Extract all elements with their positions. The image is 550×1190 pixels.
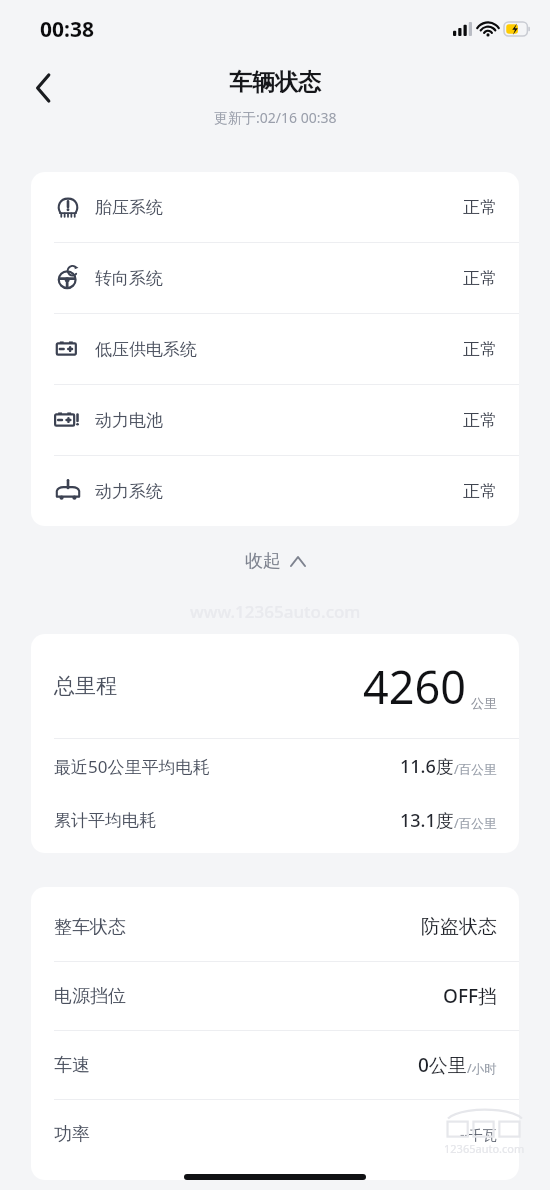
button[interactable]: 收起 [221, 540, 329, 583]
staticText: 0公里 [418, 1052, 467, 1078]
staticText: 正常 [463, 339, 497, 360]
staticText: 正常 [463, 268, 497, 289]
button[interactable]: 总里程 [31, 634, 519, 738]
staticText: OFF挡 [443, 983, 497, 1009]
staticText: 正常 [463, 197, 497, 218]
button[interactable]: Back [20, 64, 68, 112]
staticText: 正常 [463, 481, 497, 502]
staticText: 动力电池 [95, 410, 163, 431]
button[interactable]: 最近50公里平均电耗 [31, 739, 519, 793]
staticText: 最近50公里平均电耗 [54, 755, 210, 778]
button[interactable]: 动力系统 [31, 456, 519, 526]
staticText: 累计平均电耗 [54, 810, 156, 831]
button[interactable]: 低压供电系统 [31, 314, 519, 384]
staticText: 12365auto.com [444, 1141, 525, 1156]
staticText: 正常 [463, 410, 497, 431]
staticText: --千瓦 [460, 1125, 497, 1144]
staticText: /百公里 [454, 815, 497, 832]
staticText: 13.1度 [400, 808, 454, 833]
staticText: /百公里 [454, 761, 497, 778]
staticText: 电源挡位 [54, 985, 126, 1008]
staticText: 收起 [245, 550, 281, 573]
staticText: 转向系统 [95, 268, 163, 289]
staticText: 防盗状态 [421, 915, 497, 939]
staticText: 低压供电系统 [95, 339, 197, 360]
button[interactable]: 胎压系统 [31, 172, 519, 242]
staticText: 整车状态 [54, 916, 126, 939]
button[interactable]: 转向系统 [31, 243, 519, 313]
button[interactable]: 整车状态 [31, 893, 519, 961]
staticText: 00:38 [40, 15, 94, 44]
staticText: www.12365auto.com [190, 600, 361, 623]
staticText: 公里 [471, 695, 497, 711]
button[interactable]: 功率 [31, 1100, 519, 1168]
staticText: /小时 [467, 1060, 497, 1077]
staticText: 更新于:02/16 00:38 [214, 108, 337, 127]
button[interactable]: 累计平均电耗 [31, 793, 519, 847]
staticText: 胎压系统 [95, 197, 163, 218]
staticText: 车速 [54, 1054, 90, 1077]
staticText: 动力系统 [95, 481, 163, 502]
staticText: 车辆状态 [229, 68, 321, 97]
button[interactable]: 动力电池 [31, 385, 519, 455]
staticText: 11.6度 [400, 754, 454, 779]
staticText: 4260 [363, 656, 466, 717]
button[interactable]: 车速 [31, 1031, 519, 1099]
staticText: 总里程 [54, 673, 117, 699]
staticText: 功率 [54, 1123, 90, 1146]
button[interactable]: 电源挡位 [31, 962, 519, 1030]
